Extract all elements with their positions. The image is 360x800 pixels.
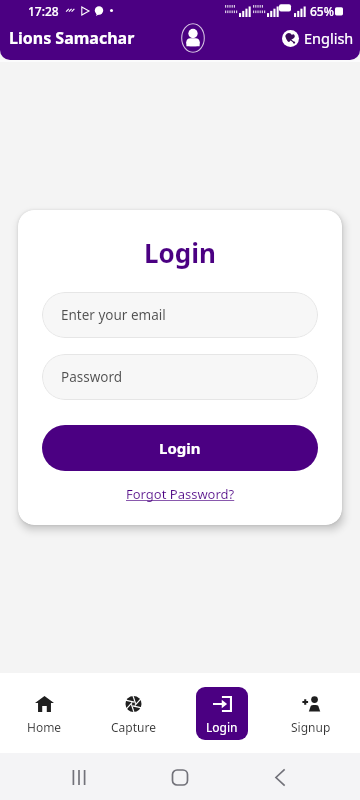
staticText: Signup: [291, 719, 331, 735]
staticText: Login: [144, 235, 216, 270]
staticText: English: [304, 28, 354, 48]
button[interactable]: Login: [196, 687, 248, 740]
staticText: Login: [206, 719, 238, 735]
staticText: Enter your email: [61, 306, 166, 324]
staticText: Lions Samachar: [9, 27, 135, 49]
button[interactable]: Password: [42, 354, 318, 400]
button[interactable]: Home: [18, 687, 70, 740]
button[interactable]: Login: [42, 425, 318, 471]
button[interactable]: Recent apps: [64, 770, 94, 785]
button[interactable]: Home: [165, 770, 195, 785]
button[interactable]: Capture: [107, 687, 159, 740]
staticText: Password: [61, 368, 123, 386]
staticText: Home: [27, 719, 62, 735]
button[interactable]: Back: [265, 770, 295, 785]
staticText: Login: [159, 438, 201, 458]
staticText: Capture: [111, 719, 156, 735]
button[interactable]: English: [282, 28, 354, 48]
button[interactable]: Enter your email: [42, 292, 318, 338]
button[interactable]: Forgot Password?: [126, 485, 235, 503]
staticText: 65%: [310, 3, 334, 19]
button[interactable]: Profile: [181, 23, 205, 53]
staticText: 17:28: [28, 3, 59, 19]
staticText: Forgot Password?: [126, 485, 235, 503]
button[interactable]: Signup: [285, 687, 337, 740]
